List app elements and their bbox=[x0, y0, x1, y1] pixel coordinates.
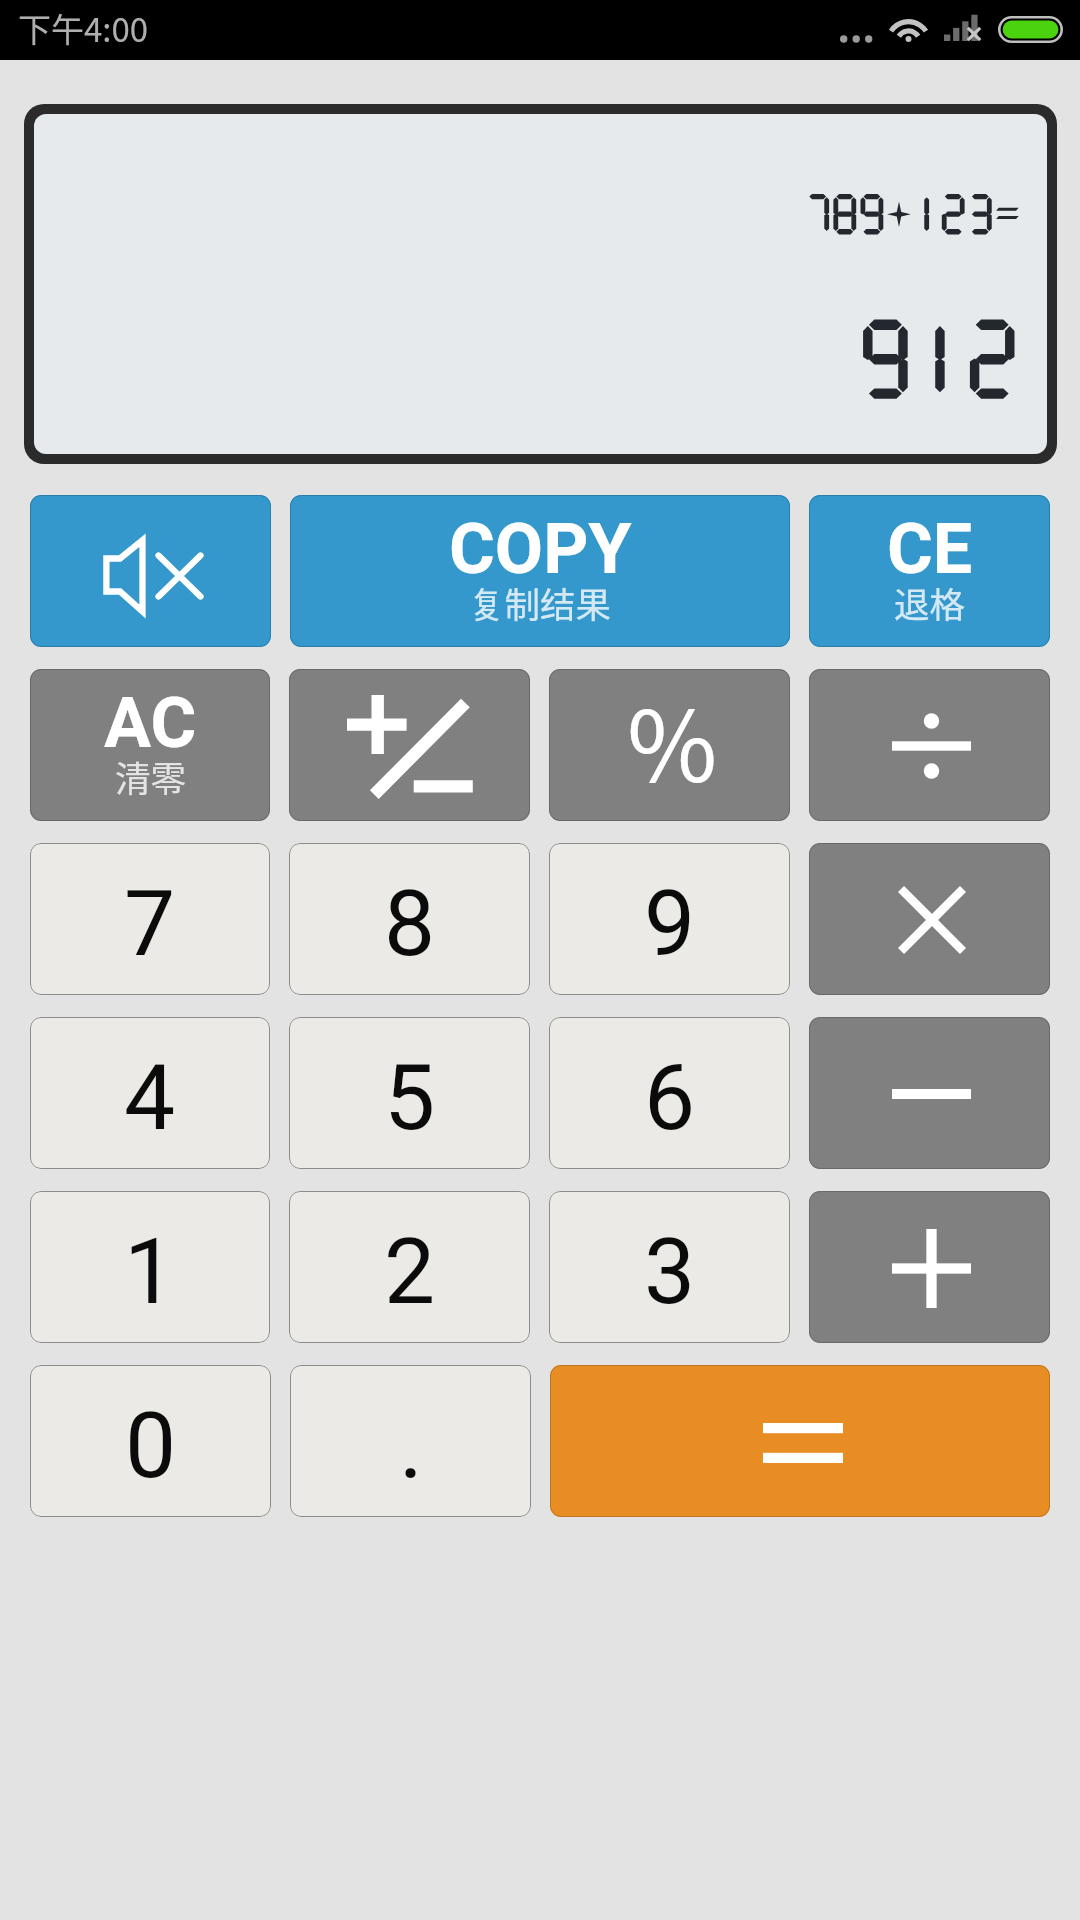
staticText: 2 bbox=[384, 1219, 436, 1326]
button[interactable]: 5 bbox=[289, 1017, 530, 1169]
staticText: 5 bbox=[384, 1045, 436, 1152]
staticText: 3 bbox=[644, 1219, 696, 1326]
button[interactable]: Add bbox=[809, 1191, 1050, 1343]
staticText: . bbox=[399, 1393, 423, 1500]
button[interactable]: 6 bbox=[549, 1017, 790, 1169]
staticText: 下午4:00 bbox=[18, 4, 149, 52]
staticText: 复制结果 bbox=[469, 577, 612, 628]
button[interactable]: 7 bbox=[30, 843, 270, 995]
button[interactable]: 2 bbox=[289, 1191, 530, 1343]
staticText: CE bbox=[887, 508, 973, 590]
button[interactable]: Subtract bbox=[809, 1017, 1050, 1169]
button[interactable]: 1 bbox=[30, 1191, 270, 1343]
staticText: 6 bbox=[644, 1045, 696, 1152]
button[interactable]: 3 bbox=[549, 1191, 790, 1343]
staticText: 7 bbox=[124, 871, 176, 978]
staticText: 0 bbox=[125, 1393, 177, 1500]
button[interactable]: Mute sound bbox=[30, 495, 271, 647]
staticText: 退格 bbox=[894, 577, 966, 628]
button[interactable]: Percent bbox=[549, 669, 790, 821]
staticText: 4 bbox=[124, 1045, 176, 1152]
staticText: 8 bbox=[384, 871, 436, 978]
staticText: 9 bbox=[644, 871, 696, 978]
button[interactable]: COPY bbox=[290, 495, 790, 647]
button[interactable]: AC bbox=[30, 669, 270, 821]
staticText: 清零 bbox=[115, 751, 187, 802]
button[interactable]: . bbox=[290, 1365, 531, 1517]
staticText: % bbox=[627, 669, 718, 810]
staticText: 1 bbox=[124, 1219, 176, 1326]
button[interactable]: Equals bbox=[550, 1365, 1050, 1517]
button[interactable]: Divide bbox=[809, 669, 1050, 821]
button[interactable]: Toggle sign bbox=[289, 669, 530, 821]
staticText: COPY bbox=[449, 508, 632, 590]
button[interactable]: 9 bbox=[549, 843, 790, 995]
button[interactable]: 8 bbox=[289, 843, 530, 995]
button[interactable]: 4 bbox=[30, 1017, 270, 1169]
button[interactable]: Multiply bbox=[809, 843, 1050, 995]
button[interactable]: 0 bbox=[30, 1365, 271, 1517]
button[interactable]: CE bbox=[809, 495, 1050, 647]
staticText: AC bbox=[104, 682, 197, 764]
